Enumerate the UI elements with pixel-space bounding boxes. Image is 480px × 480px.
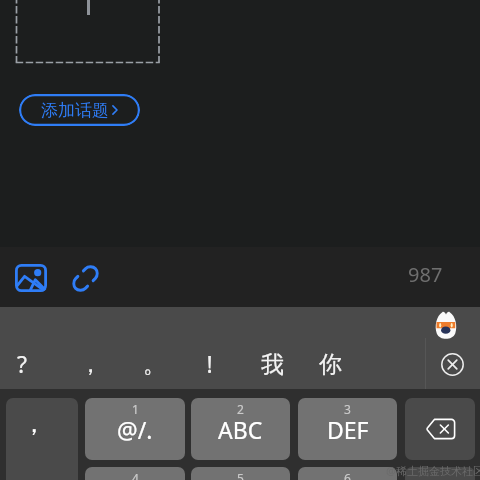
button[interactable]: 添加话题 (19, 94, 140, 126)
staticText: ? (17, 348, 27, 379)
staticText: 4 (132, 470, 139, 480)
staticText: 你 (319, 350, 342, 379)
staticText: 987 (408, 261, 443, 288)
button[interactable]: Backspace (405, 398, 475, 460)
button[interactable]: 你 (304, 338, 356, 390)
staticText: 2 (237, 401, 244, 417)
staticText: ， (22, 409, 46, 439)
button[interactable]: Hide keyboard (441, 353, 464, 376)
staticText: @稀土掘金技术社区 (386, 463, 480, 478)
button[interactable]: ， (64, 338, 116, 390)
staticText: 添加话题 (41, 100, 109, 121)
staticText: 3 (344, 401, 351, 417)
staticText: 5 (237, 470, 244, 480)
button[interactable]: Input method settings (434, 311, 458, 339)
button[interactable]: Insert image (9, 257, 52, 299)
staticText: 我 (261, 350, 284, 379)
button[interactable] (405, 467, 475, 480)
staticText: ABC (218, 414, 263, 445)
button[interactable]: 2 (191, 398, 290, 460)
button[interactable]: 4 (85, 467, 185, 480)
staticText: ， (79, 350, 102, 379)
button[interactable]: 。 (128, 338, 180, 390)
button[interactable]: ， (6, 398, 78, 480)
staticText: DEF (327, 414, 369, 445)
button[interactable]: 5 (191, 467, 290, 480)
button[interactable]: Insert link (64, 257, 107, 299)
button[interactable]: ! (183, 337, 235, 389)
staticText: 6 (344, 470, 351, 480)
button[interactable]: ? (0, 337, 48, 389)
button[interactable]: 6 (298, 467, 397, 480)
staticText: 1 (132, 401, 139, 417)
staticText: 。 (143, 350, 166, 379)
button[interactable]: 3 (298, 398, 397, 460)
button[interactable]: 我 (246, 338, 298, 390)
staticText: ! (206, 348, 213, 379)
button[interactable]: 1 (85, 398, 185, 460)
staticText: @/. (117, 414, 153, 445)
